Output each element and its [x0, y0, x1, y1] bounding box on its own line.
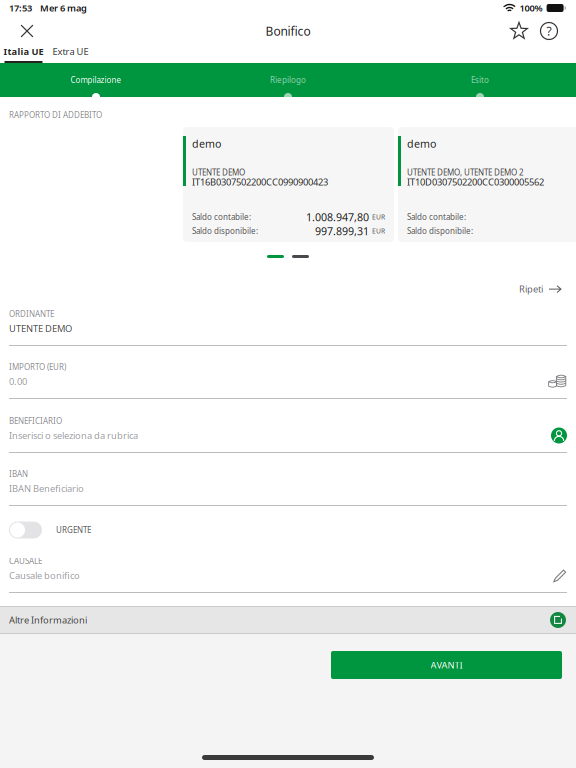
button[interactable]: Altre Informazioni	[0, 606, 576, 634]
staticText: CAUSALE	[9, 556, 42, 566]
staticText: demo	[192, 136, 221, 151]
staticText: Altre Informazioni	[9, 614, 87, 626]
staticText: demo	[407, 136, 436, 151]
button[interactable]: URGENTE	[9, 521, 567, 539]
staticText: Saldo disponibile:	[192, 226, 258, 236]
button[interactable]: Riepilogo	[192, 63, 384, 97]
button[interactable]: Extra UE	[44, 46, 89, 63]
staticText: EUR	[372, 227, 385, 235]
staticText: IT16B0307502200CC0990900423	[192, 176, 328, 188]
staticText: UTENTE DEMO	[9, 322, 72, 335]
staticText: 100%	[520, 2, 543, 14]
staticText: BENEFICIARIO	[9, 416, 62, 426]
staticText: RAPPORTO DI ADDEBITO	[9, 110, 102, 120]
staticText: URGENTE	[56, 525, 91, 535]
button[interactable]: Chiudi	[9, 16, 45, 46]
staticText: Italia UE	[3, 45, 43, 58]
staticText: UTENTE DEMO, UTENTE DEMO 2	[407, 167, 524, 178]
button[interactable]: Italia UE	[0, 46, 44, 63]
staticText: ?	[546, 23, 551, 39]
staticText: Mer 6 mag	[40, 2, 87, 14]
staticText: IBAN	[9, 469, 28, 479]
staticText: IT10D0307502200CC0300005562	[407, 176, 544, 188]
button[interactable]: demo	[183, 127, 394, 242]
staticText: Inserisci o seleziona da rubrica	[9, 429, 138, 442]
staticText: Saldo contabile:	[192, 212, 251, 222]
staticText: Saldo contabile:	[407, 212, 466, 222]
staticText: EUR	[372, 213, 385, 221]
staticText: AVANTI	[430, 659, 462, 671]
staticText: 997.899,31	[315, 224, 369, 238]
button[interactable]: Ripeti	[519, 281, 562, 297]
button[interactable]: Aiuto	[534, 16, 564, 46]
staticText: ORDINANTE	[9, 309, 54, 319]
staticText: UTENTE DEMO	[192, 167, 245, 178]
staticText: Saldo disponibile:	[407, 226, 473, 236]
staticText: Ripeti	[519, 283, 543, 295]
staticText: Compilazione	[70, 75, 121, 85]
staticText: Extra UE	[52, 45, 88, 58]
button[interactable]: AVANTI	[331, 651, 562, 679]
staticText: IBAN Beneficiario	[9, 482, 84, 495]
staticText: 1.008.947,80	[306, 210, 369, 224]
staticText: Bonifico	[265, 23, 310, 39]
staticText: Esito	[471, 75, 489, 85]
staticText: Riepilogo	[270, 75, 306, 85]
staticText: 17:53	[9, 2, 32, 14]
button[interactable]: demo	[398, 127, 576, 242]
button[interactable]: Preferiti	[504, 16, 534, 46]
staticText: 0.00	[9, 375, 27, 388]
button[interactable]: Compilazione	[0, 63, 192, 97]
button[interactable]: Esito	[384, 63, 576, 97]
staticText: Causale bonifico	[9, 569, 80, 582]
staticText: IMPORTO (EUR)	[9, 362, 66, 372]
